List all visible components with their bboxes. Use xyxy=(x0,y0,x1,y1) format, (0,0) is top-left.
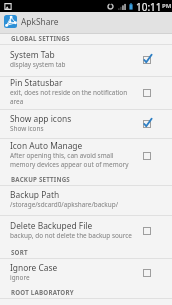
staticText: BACKUP SETTINGS xyxy=(11,175,70,183)
button[interactable]: Delete Backuped File xyxy=(0,216,172,247)
staticText: Backup Path xyxy=(10,189,60,200)
button[interactable]: Show app icons xyxy=(0,110,172,139)
button[interactable]: Pin Statusbar xyxy=(0,77,172,110)
staticText: ignore xyxy=(10,273,30,282)
staticText: System Tab xyxy=(10,49,55,60)
button[interactable]: Ignore Case xyxy=(0,259,172,288)
button[interactable]: Icon Auto Manage xyxy=(0,139,172,173)
staticText: display system tab xyxy=(10,60,66,69)
staticText: Icon Auto Manage xyxy=(10,140,83,151)
staticText: After opening this, can avoid small memo… xyxy=(10,151,137,169)
staticText: Show icons xyxy=(10,124,44,133)
staticText: Ignore Case xyxy=(10,262,58,273)
staticText: GLOBAL SETTINGS xyxy=(11,34,70,42)
staticText: 10:11 xyxy=(136,0,162,12)
staticText: SORT xyxy=(11,248,28,256)
staticText: ROOT LABORATORY xyxy=(11,288,74,296)
staticText: Show app icons xyxy=(10,113,72,124)
button[interactable]: App icon xyxy=(4,15,17,28)
staticText: ApkShare xyxy=(21,16,59,27)
staticText: /storage/sdcard0/apkshare/backup/ xyxy=(10,200,119,209)
staticText: Delete Backuped File xyxy=(10,220,93,231)
staticText: backup, do not delete the backup source xyxy=(10,231,132,240)
button[interactable]: Backup Path xyxy=(0,186,172,216)
staticText: Pin Statusbar xyxy=(10,77,63,88)
staticText: PM xyxy=(162,2,172,10)
staticText: exit, does not reside on the notificatio… xyxy=(10,88,137,106)
button[interactable]: System Tab xyxy=(0,45,172,77)
